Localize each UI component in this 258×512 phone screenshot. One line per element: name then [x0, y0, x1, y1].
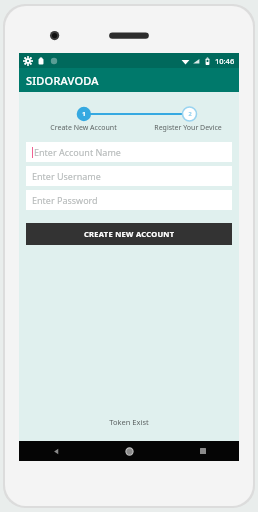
- staticText: Enter Username: [32, 170, 101, 182]
- staticText: Enter Password: [32, 194, 98, 206]
- button[interactable]: CREATE NEW ACCOUNT: [26, 223, 232, 245]
- button[interactable]: Home: [93, 441, 166, 461]
- staticText: CREATE NEW ACCOUNT: [84, 229, 175, 239]
- button[interactable]: Recents: [166, 441, 239, 461]
- button[interactable]: Back: [19, 441, 93, 461]
- button[interactable]: Enter Account Name: [26, 142, 232, 162]
- staticText: Create New Account: [50, 123, 117, 133]
- button[interactable]: Enter Password: [26, 190, 232, 210]
- staticText: 10:46: [215, 56, 235, 66]
- staticText: 2: [186, 110, 194, 117]
- button[interactable]: Enter Username: [26, 166, 232, 186]
- staticText: 1: [80, 110, 88, 118]
- staticText: Enter Account Name: [34, 146, 121, 158]
- staticText: SIDORAVODA: [26, 73, 99, 88]
- staticText: Register Your Device: [154, 123, 222, 133]
- staticText: Token Exist: [19, 417, 239, 427]
